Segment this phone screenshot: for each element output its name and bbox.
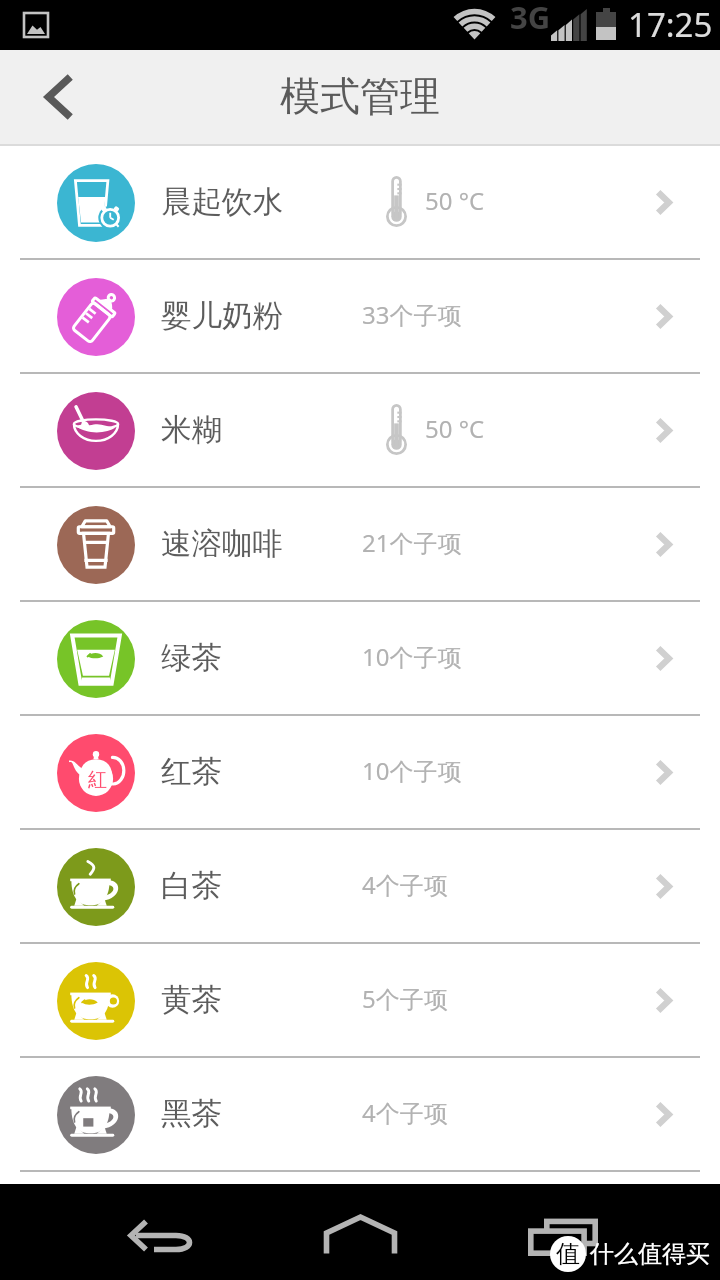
staticText: 紅 — [88, 768, 107, 792]
button[interactable]: 黑茶 — [0, 1058, 720, 1172]
staticText: 50 °C — [425, 412, 485, 445]
button[interactable]: 白茶 — [0, 830, 720, 944]
button[interactable]: Back — [100, 1184, 220, 1280]
staticText: 10个子项 — [362, 754, 462, 787]
staticText: 4个子项 — [362, 1096, 448, 1129]
button[interactable]: 米糊 — [0, 374, 720, 488]
button[interactable]: 婴儿奶粉 — [0, 260, 720, 374]
staticText: 33个子项 — [362, 298, 462, 331]
staticText: 黄茶 — [161, 981, 222, 1019]
button[interactable]: 速溶咖啡 — [0, 488, 720, 602]
staticText: 模式管理 — [280, 71, 440, 121]
staticText: 晨起饮水 — [161, 183, 283, 221]
staticText: 50 °C — [425, 184, 485, 217]
button[interactable]: 晨起饮水 — [0, 146, 720, 260]
button[interactable]: 紅 — [0, 716, 720, 830]
staticText: 米糊 — [161, 411, 222, 449]
button[interactable]: Home — [300, 1184, 420, 1280]
staticText: 红茶 — [161, 753, 222, 791]
staticText: 白茶 — [161, 867, 222, 905]
staticText: 5个子项 — [362, 982, 448, 1015]
staticText: 婴儿奶粉 — [161, 297, 283, 335]
staticText: 17:25 — [628, 2, 713, 47]
staticText: 绿茶 — [161, 639, 222, 677]
staticText: 21个子项 — [362, 526, 462, 559]
staticText: 4个子项 — [362, 868, 448, 901]
staticText: 值 — [556, 1239, 580, 1269]
staticText: 10个子项 — [362, 640, 462, 673]
button[interactable]: Recent apps — [510, 1184, 620, 1280]
staticText: 什么值得买 — [590, 1239, 710, 1269]
staticText: 黑茶 — [161, 1095, 222, 1133]
button[interactable]: 黄茶 — [0, 944, 720, 1058]
staticText: 速溶咖啡 — [161, 525, 283, 563]
button[interactable]: Back — [0, 50, 116, 144]
button[interactable]: 绿茶 — [0, 602, 720, 716]
staticText: 3G — [510, 0, 551, 38]
